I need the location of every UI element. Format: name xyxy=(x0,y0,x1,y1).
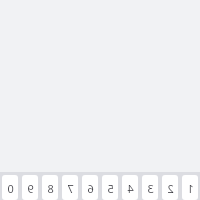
button[interactable]: 7 xyxy=(62,175,78,200)
button[interactable]: 1 xyxy=(182,175,198,200)
staticText: 7 xyxy=(67,181,74,196)
staticText: 1 xyxy=(187,181,194,196)
button[interactable]: 3 xyxy=(142,175,158,200)
staticText: 6 xyxy=(87,181,94,196)
staticText: 4 xyxy=(127,181,134,196)
button[interactable]: 2 xyxy=(162,175,178,200)
staticText: 0 xyxy=(7,181,14,196)
button[interactable]: 9 xyxy=(22,175,38,200)
button[interactable]: 5 xyxy=(102,175,118,200)
button[interactable]: 8 xyxy=(42,175,58,200)
staticText: 5 xyxy=(107,181,114,196)
staticText: 9 xyxy=(27,181,34,196)
staticText: 8 xyxy=(47,181,54,196)
button[interactable]: 4 xyxy=(122,175,138,200)
button[interactable]: 6 xyxy=(82,175,98,200)
staticText: 3 xyxy=(147,181,154,196)
button[interactable]: 0 xyxy=(2,175,18,200)
staticText: 2 xyxy=(167,181,174,196)
